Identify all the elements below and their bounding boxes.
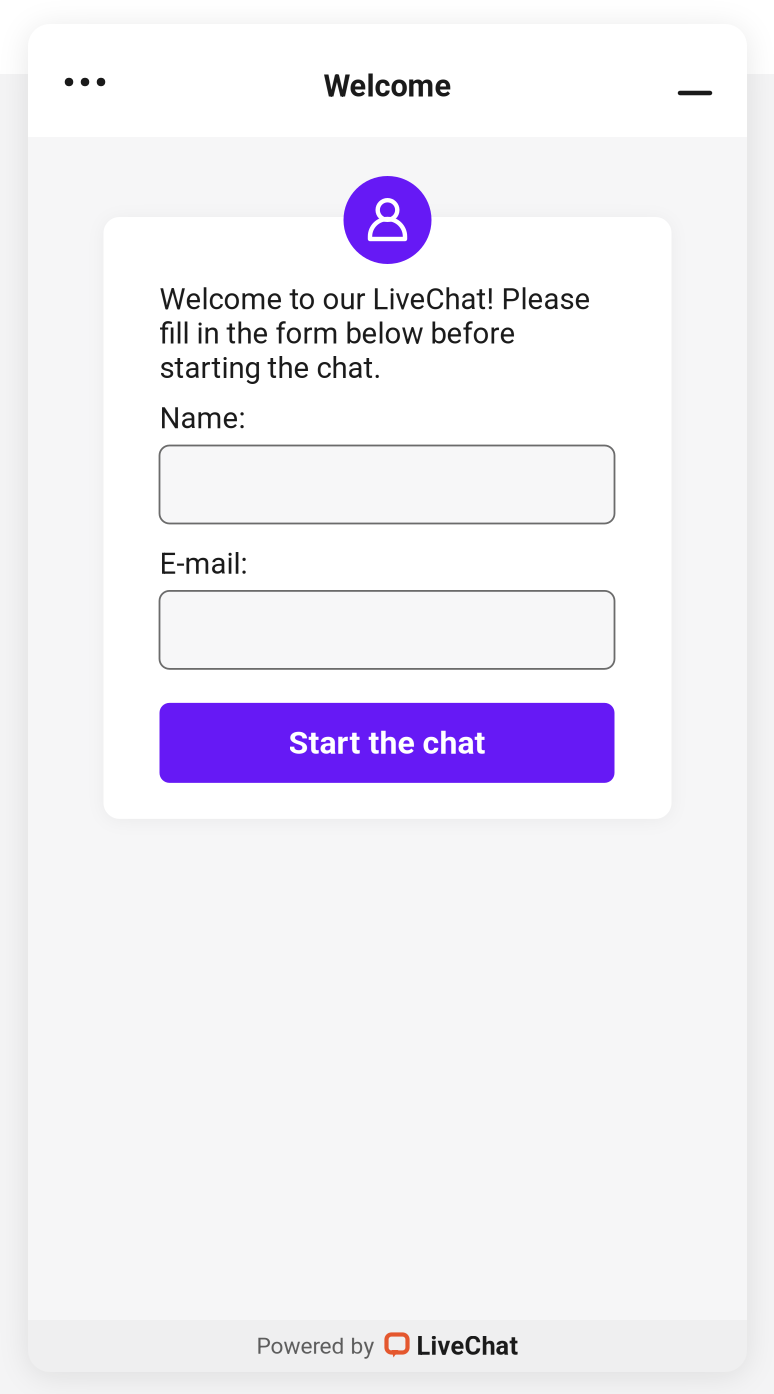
staticText: starting the chat.: [159, 351, 381, 385]
button[interactable]: Start the chat: [159, 703, 614, 783]
staticText: Welcome to our LiveChat! Please: [159, 282, 590, 316]
staticText: LiveChat: [416, 1331, 518, 1361]
staticText: Start the chat: [288, 724, 485, 762]
staticText: Name:: [159, 401, 245, 435]
staticText: Powered by: [256, 1333, 374, 1359]
button[interactable]: Menu: [49, 51, 121, 113]
button[interactable]: Minimize: [659, 62, 731, 124]
staticText: fill in the form below before: [159, 316, 515, 351]
staticText: E-mail:: [159, 546, 247, 581]
staticText: Welcome: [323, 68, 451, 104]
